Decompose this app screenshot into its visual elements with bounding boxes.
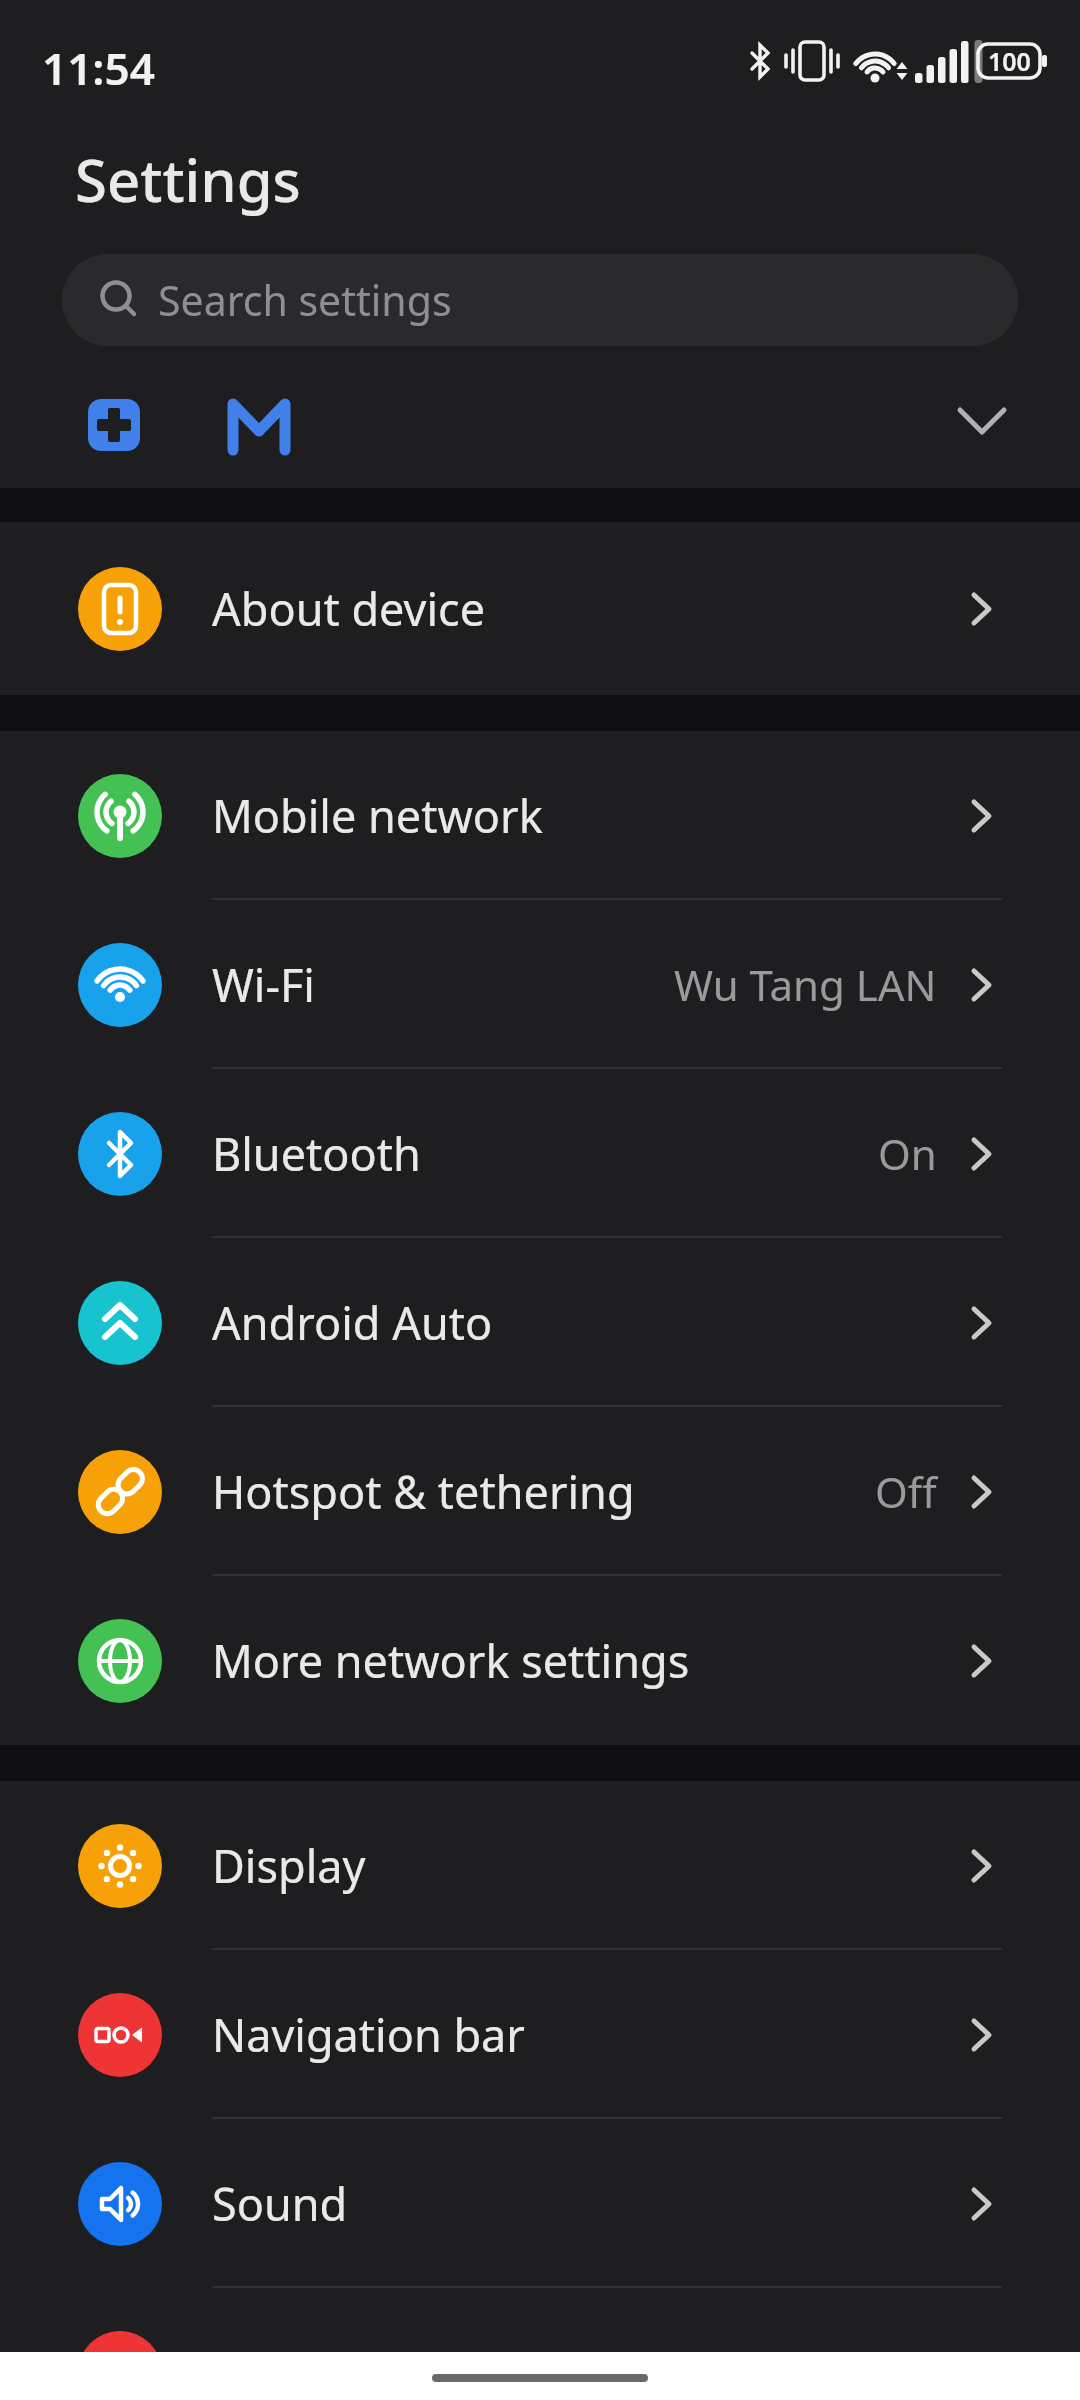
button[interactable]: Notifications & status bar [0,2288,1080,2400]
staticText: 100 [988,44,1031,78]
staticText: About device [212,578,486,639]
staticText: Notifications & status bar [212,2342,748,2400]
button[interactable]: Bluetooth [0,1069,1080,1238]
staticText: On [878,1125,937,1182]
staticText: Android Auto [212,1292,493,1353]
staticText: 11:54 [42,38,155,98]
staticText: Display [212,1835,366,1896]
button[interactable] [952,400,1012,444]
button[interactable]: More network settings [0,1576,1080,1745]
staticText: Navigation bar [212,2004,525,2065]
button[interactable]: Sound [0,2119,1080,2288]
staticText: Settings [75,140,301,219]
button[interactable]: Wi-Fi [0,900,1080,1069]
button[interactable]: Search settings [62,254,1018,346]
staticText: Off [875,1463,937,1520]
staticText: Search settings [158,272,452,328]
staticText: Hotspot & tethering [212,1461,635,1522]
staticText: Bluetooth [212,1123,421,1184]
staticText: Wi-Fi [212,954,315,1015]
staticText: Mobile network [212,785,543,846]
button[interactable]: About device [0,522,1080,695]
button[interactable]: Display [0,1781,1080,1950]
button[interactable] [88,399,140,451]
button[interactable]: Navigation bar [0,1950,1080,2119]
button[interactable]: Hotspot & tethering [0,1407,1080,1576]
staticText: Sound [212,2173,348,2234]
staticText: Wu Tang LAN [674,956,937,1013]
button[interactable]: Android Auto [0,1238,1080,1407]
staticText: More network settings [212,1630,690,1691]
button[interactable]: Mobile network [0,731,1080,900]
button[interactable] [226,394,292,456]
